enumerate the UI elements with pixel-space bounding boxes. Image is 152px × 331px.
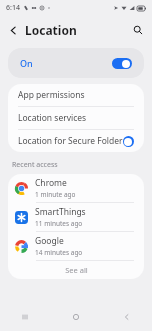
staticText: 6:14 — [6, 3, 20, 13]
staticText: On — [20, 57, 33, 69]
button[interactable]: See all — [8, 261, 144, 279]
button[interactable]: Back — [3, 20, 23, 40]
button[interactable]: Search — [128, 20, 148, 40]
staticText: 14 minutes ago — [35, 248, 83, 257]
staticText: Location services — [18, 112, 87, 124]
staticText: Location — [25, 22, 77, 38]
button[interactable]: Recents — [0, 303, 50, 331]
staticText: Google — [35, 235, 64, 247]
staticText: SmartThings — [35, 206, 86, 218]
staticText: Chrome — [35, 177, 67, 189]
button[interactable]: App permissions — [8, 84, 144, 106]
staticText: 1 minute ago — [35, 190, 76, 199]
button[interactable]: Home — [50, 303, 101, 331]
button[interactable]: SmartThings — [8, 203, 144, 231]
staticText: App permissions — [18, 89, 85, 101]
staticText: Recent access — [12, 160, 58, 170]
staticText: Location for Secure Folder — [18, 135, 123, 147]
staticText: See all — [65, 265, 88, 275]
button[interactable]: Google — [8, 232, 144, 260]
button[interactable]: Chrome — [8, 174, 144, 202]
button[interactable]: On — [8, 48, 144, 78]
button[interactable]: Location services — [8, 107, 144, 129]
staticText: 11 minutes ago — [35, 219, 83, 228]
button[interactable]: Location for Secure Folder — [8, 130, 144, 152]
